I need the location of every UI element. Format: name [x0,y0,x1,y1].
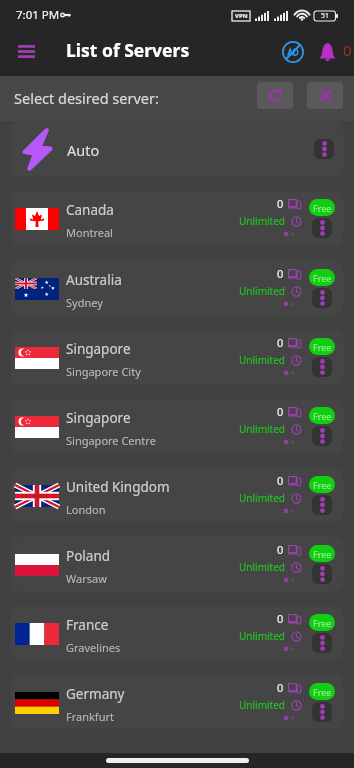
button[interactable]: Singapore [11,399,343,453]
button[interactable]: Notifications [316,41,338,63]
button[interactable]: Free [309,407,335,424]
staticText: London [66,502,106,517]
button[interactable]: Free [309,476,335,493]
button[interactable]: Free [309,269,335,286]
staticText: Unlimited [239,214,285,228]
button[interactable]: Free [309,338,335,355]
staticText: 0 [277,404,284,419]
button[interactable]: Free [309,683,335,700]
staticText: Unlimited [239,560,285,574]
button[interactable]: More options [312,426,332,446]
button[interactable]: Free [309,199,335,216]
staticText: 51 [321,11,330,21]
staticText: 0 [277,473,284,488]
staticText: Poland [66,547,111,565]
staticText: 0 [277,335,284,350]
staticText: Sydney [66,295,103,310]
staticText: Singapore [66,340,131,358]
staticText: 0 [277,611,284,626]
staticText: Canada [66,201,114,219]
staticText: Frankfurt [66,709,114,724]
button[interactable]: More options [312,288,332,308]
button[interactable]: Free [309,614,335,631]
staticText: France [66,616,109,634]
staticText: 0 [277,680,284,695]
button[interactable]: More options [314,139,334,159]
staticText: Germany [66,685,125,703]
button[interactable]: More options [312,495,332,515]
button[interactable]: Clear [307,82,343,109]
button[interactable]: France [11,606,343,660]
staticText: Unlimited [239,353,285,367]
staticText: 0 [277,542,284,557]
staticText: Gravelines [66,640,121,655]
staticText: Unlimited [239,491,285,505]
staticText: Free [313,202,332,214]
staticText: 0 [277,266,284,281]
staticText: 0 [343,40,352,60]
button[interactable]: More options [312,702,332,722]
button[interactable]: Auto [11,121,343,177]
staticText: Auto [67,140,100,160]
button[interactable]: United Kingdom [11,468,343,522]
staticText: Free [313,617,332,629]
button[interactable]: Canada [11,191,343,245]
staticText: Australia [66,271,122,289]
staticText: Unlimited [239,284,285,298]
button[interactable]: Open navigation menu [7,32,45,70]
staticText: Singapore Centre [66,433,156,448]
staticText: Free [313,686,332,698]
staticText: List of Servers [66,38,190,62]
staticText: United Kingdom [66,478,170,496]
button[interactable]: More options [312,564,332,584]
staticText: Unlimited [239,629,285,643]
button[interactable]: More options [312,218,332,238]
staticText: Singapore [66,409,131,427]
staticText: Select desired server: [14,88,159,108]
staticText: 7:01 PM [16,7,60,23]
staticText: Singapore City [66,364,141,379]
staticText: Unlimited [239,422,285,436]
button[interactable]: Free [309,545,335,562]
staticText: Unlimited [239,698,285,712]
staticText: Warsaw [66,571,107,586]
staticText: Montreal [66,225,113,240]
button[interactable]: Singapore [11,330,343,384]
button[interactable]: Ad blocker [278,37,308,67]
staticText: 0 [277,196,284,211]
staticText: Free [313,479,332,491]
button[interactable]: More options [312,633,332,653]
staticText: Free [313,410,332,422]
button[interactable]: Poland [11,537,343,591]
staticText: VPN [235,12,248,20]
staticText: Free [313,272,332,284]
button[interactable]: More options [312,357,332,377]
button[interactable]: Germany [11,675,343,729]
button[interactable]: Refresh [257,82,293,109]
staticText: Free [313,341,332,353]
button[interactable]: Australia [11,261,343,315]
staticText: Free [313,548,332,560]
